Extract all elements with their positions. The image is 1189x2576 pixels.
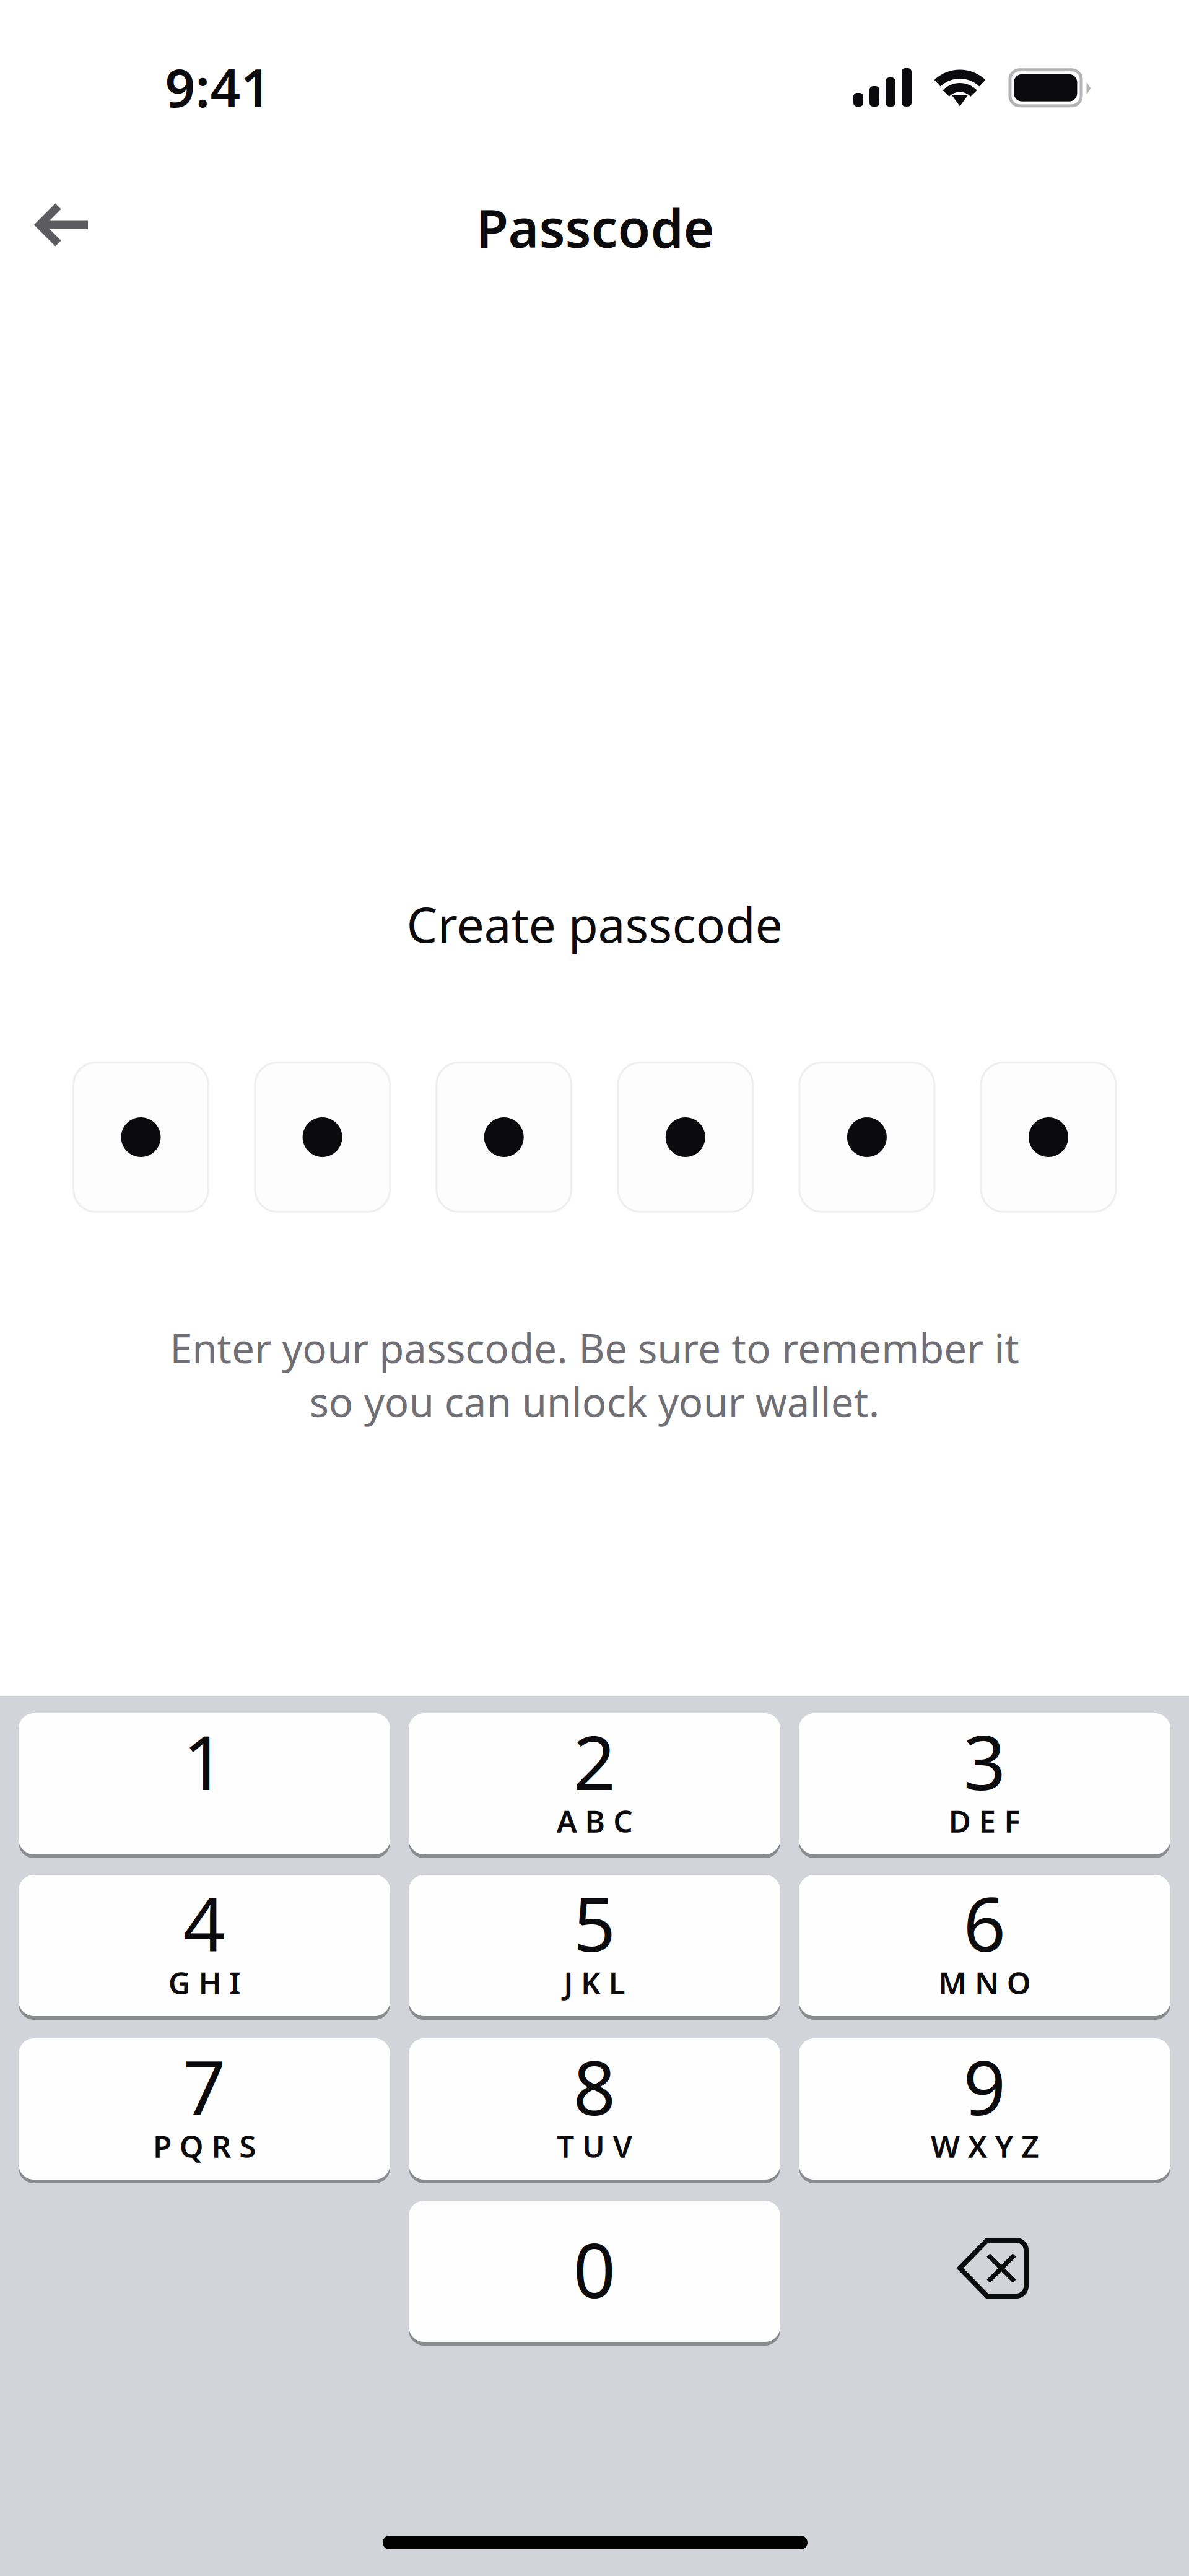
- staticText: 5: [573, 1873, 616, 1972]
- staticText: MNO: [938, 1962, 1031, 2003]
- button[interactable]: Back: [8, 178, 113, 271]
- button[interactable]: 9: [799, 2038, 1170, 2183]
- staticText: WXYZ: [931, 2126, 1039, 2166]
- button[interactable]: 2: [409, 1713, 780, 1858]
- staticText: 6: [963, 1873, 1006, 1972]
- staticText: DEF: [949, 1800, 1021, 1841]
- staticText: GHI: [168, 1962, 240, 2003]
- button[interactable]: 0: [409, 2201, 780, 2346]
- staticText: 7: [183, 2037, 226, 2136]
- staticText: 2: [573, 1712, 616, 1811]
- staticText: 0: [573, 2220, 616, 2318]
- staticText: 9:41: [165, 52, 271, 122]
- button[interactable]: 8: [409, 2038, 780, 2183]
- button[interactable]: 7: [19, 2038, 390, 2183]
- button[interactable]: 6: [799, 1875, 1170, 2020]
- staticText: 4: [183, 1873, 226, 1972]
- button[interactable]: 4: [19, 1875, 390, 2020]
- staticText: Passcode: [476, 192, 714, 262]
- staticText: TUV: [557, 2126, 632, 2166]
- button[interactable]: Delete: [912, 2206, 1073, 2330]
- staticText: Create passcode: [407, 891, 782, 956]
- staticText: 9: [963, 2037, 1006, 2136]
- button[interactable]: 1: [19, 1713, 390, 1858]
- staticText: 1: [183, 1712, 226, 1811]
- button[interactable]: 5: [409, 1875, 780, 2020]
- staticText: JKL: [564, 1962, 625, 2003]
- staticText: Enter your passcode. Be sure to remember…: [170, 1321, 1019, 1428]
- staticText: 8: [573, 2037, 616, 2136]
- staticText: 3: [963, 1712, 1006, 1811]
- staticText: ABC: [557, 1800, 632, 1841]
- staticText: PQRS: [153, 2126, 256, 2166]
- button[interactable]: 3: [799, 1713, 1170, 1858]
